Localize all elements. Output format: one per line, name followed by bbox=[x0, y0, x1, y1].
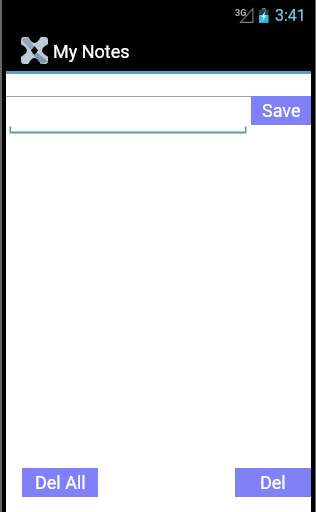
staticText: 3G bbox=[235, 8, 247, 19]
button[interactable]: Del bbox=[235, 468, 311, 497]
button[interactable]: Del All bbox=[22, 468, 98, 497]
staticText: Del All bbox=[35, 472, 86, 493]
staticText: Save bbox=[262, 100, 301, 121]
staticText: 3:41 bbox=[275, 6, 306, 25]
button[interactable] bbox=[9, 97, 247, 134]
button[interactable]: Save bbox=[251, 96, 311, 125]
staticText: My Notes bbox=[53, 41, 130, 62]
staticText: Del bbox=[260, 472, 286, 493]
